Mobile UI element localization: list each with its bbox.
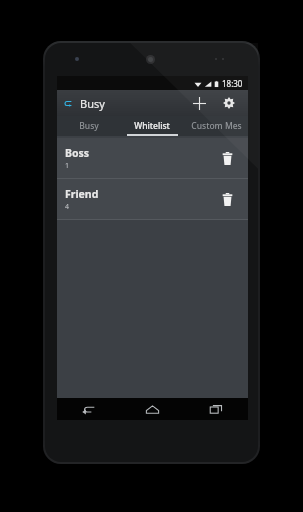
staticText: Whitelist: [134, 120, 170, 132]
staticText: 1: [65, 161, 70, 171]
staticText: Custom Mes: [191, 120, 242, 132]
button[interactable]: Navigate up: [63, 93, 106, 114]
staticText: 18:30: [222, 78, 243, 89]
staticText: Busy: [80, 96, 105, 111]
button[interactable]: Custom Mes: [184, 116, 248, 136]
staticText: Friend: [65, 187, 99, 201]
button[interactable]: Delete Friend: [214, 186, 240, 212]
button[interactable]: Home: [120, 398, 184, 420]
button[interactable]: Recent apps: [184, 398, 248, 420]
button[interactable]: Back: [57, 398, 120, 420]
button[interactable]: Delete Boss: [214, 145, 240, 171]
staticText: 4: [65, 202, 70, 212]
staticText: Busy: [79, 120, 99, 132]
other: Navigate up: [64, 99, 73, 108]
button[interactable]: Whitelist: [120, 116, 184, 136]
staticText: Boss: [65, 146, 90, 160]
button[interactable]: Busy: [57, 116, 120, 136]
button[interactable]: Add: [186, 90, 212, 116]
button[interactable]: Settings: [216, 90, 242, 116]
button[interactable]: Boss: [57, 138, 248, 178]
button[interactable]: Friend: [57, 179, 248, 219]
